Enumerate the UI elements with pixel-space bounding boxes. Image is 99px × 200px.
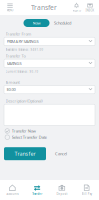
staticText: Amount	[5, 79, 19, 85]
staticText: Accounts	[6, 192, 18, 196]
button[interactable]: Transfer	[25, 180, 50, 200]
staticText: Current Balance: $0.70	[5, 70, 38, 73]
button[interactable]: Inbox	[83, 0, 97, 14]
staticText: Transfer To	[5, 53, 25, 58]
button[interactable]: Cancel	[46, 147, 76, 160]
button[interactable]: $0.00	[0, 84, 99, 94]
button[interactable]: Select Transfer Date	[0, 133, 99, 140]
staticText: Description (Optional)	[5, 98, 42, 104]
button[interactable]: SAVINGS	[0, 58, 99, 68]
staticText: Now	[32, 20, 40, 26]
button[interactable]: Scheduled	[49, 19, 75, 27]
staticText: $0.00	[6, 87, 15, 92]
staticText: Transfer From	[5, 31, 31, 37]
button[interactable]: Menu	[2, 0, 18, 14]
staticText: MENU	[6, 8, 13, 12]
staticText: PRIMARY SAVINGS	[6, 39, 38, 44]
button[interactable]: Deposit	[49, 180, 74, 200]
button[interactable]: Accounts	[0, 180, 25, 200]
button[interactable]: Transfer Now	[0, 126, 99, 133]
staticText: ALERTS	[72, 9, 80, 12]
staticText: Transfer Now	[12, 128, 36, 134]
staticText: SAVINGS	[6, 61, 21, 66]
button[interactable]: Transfer	[4, 147, 46, 160]
staticText: Bill Pay	[82, 192, 92, 196]
staticText: Cancel	[55, 151, 67, 156]
button[interactable]: Alerts	[70, 0, 83, 14]
button[interactable]: Now	[23, 19, 49, 27]
staticText: Scheduled	[54, 20, 71, 26]
button[interactable]: Bill Pay	[74, 180, 99, 200]
staticText: Select Transfer Date	[12, 134, 47, 140]
staticText: Available Balance: $481.00	[5, 48, 43, 51]
staticText: Transfer	[14, 150, 35, 157]
staticText: INBOX	[85, 9, 94, 12]
staticText: Transfer	[31, 3, 57, 12]
staticText: Deposit	[56, 192, 67, 196]
button[interactable]: PRIMARY SAVINGS	[0, 36, 99, 46]
staticText: Transfer	[32, 192, 42, 196]
